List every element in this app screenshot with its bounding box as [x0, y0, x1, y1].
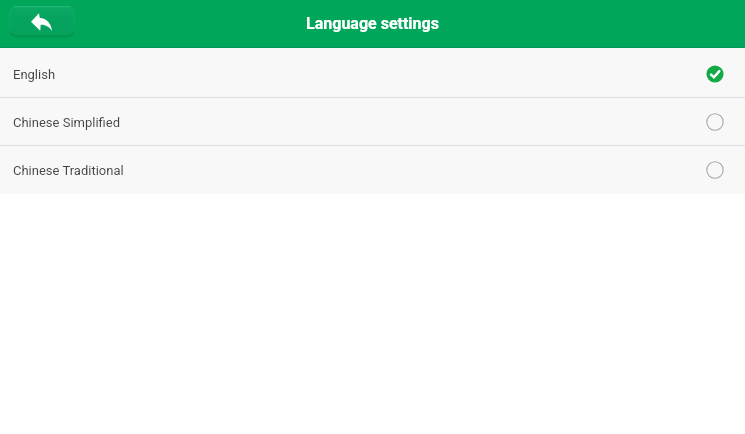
staticText: Chinese Traditional [13, 163, 124, 178]
button[interactable]: Back [9, 6, 75, 38]
staticText: English [13, 67, 56, 82]
staticText: Language settings [0, 14, 745, 33]
button[interactable]: English [0, 50, 745, 98]
button[interactable]: Chinese Traditional [0, 146, 745, 194]
staticText: Chinese Simplified [13, 115, 121, 130]
button[interactable]: Chinese Simplified [0, 98, 745, 146]
